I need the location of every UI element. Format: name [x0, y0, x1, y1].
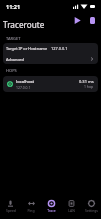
- staticText: TARGET: [6, 36, 21, 41]
- staticText: 1 hop: [84, 84, 94, 89]
- staticText: 11:21: [6, 3, 21, 10]
- staticText: Ping: [27, 208, 35, 213]
- button[interactable]: Speed: [0, 193, 21, 219]
- staticText: LAN: [68, 208, 75, 213]
- button[interactable]: Ping: [21, 193, 41, 219]
- staticText: Traceroute: [3, 19, 45, 30]
- button[interactable]: Target IP or Hostname: [3, 43, 98, 54]
- staticText: localhost: [16, 79, 35, 85]
- staticText: Advanced: [6, 57, 24, 62]
- staticText: Speed: [6, 208, 16, 213]
- staticText: Target IP or Hostname: [6, 46, 48, 51]
- staticText: Trace: [47, 208, 56, 213]
- button[interactable]: LAN: [61, 193, 81, 219]
- button[interactable]: Start trace: [71, 14, 83, 26]
- staticText: HOPS: [6, 68, 17, 73]
- staticText: 127.0.0.1: [16, 85, 31, 90]
- button[interactable]: Trace: [41, 193, 61, 219]
- staticText: Settings: [85, 208, 98, 213]
- staticText: 0.31 ms: [79, 79, 94, 84]
- staticText: 127.0.0.1: [51, 46, 68, 51]
- button[interactable]: Advanced: [3, 54, 98, 64]
- button[interactable]: Settings: [81, 193, 101, 219]
- button[interactable]: Saved traces: [86, 14, 98, 26]
- button[interactable]: localhost: [3, 76, 98, 92]
